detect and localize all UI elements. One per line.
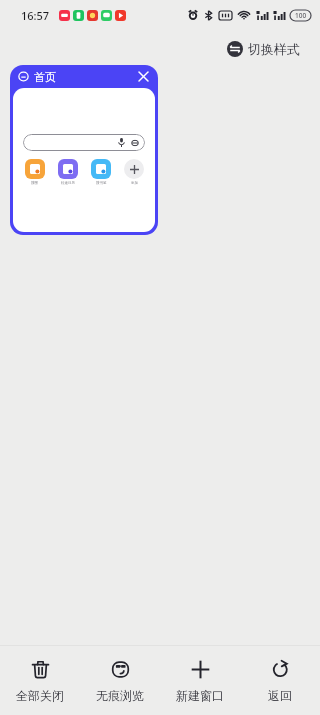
staticText: 100 [295, 11, 307, 20]
button[interactable]: 关闭标签页 [135, 68, 152, 85]
staticText: 搜图 [31, 181, 38, 185]
button[interactable]: 搜书签 [86, 159, 116, 185]
staticText: 首页 [34, 70, 56, 84]
button[interactable]: 切换样式 [221, 37, 306, 61]
staticText: 返回 [268, 688, 292, 703]
staticText: 切换样式 [248, 41, 300, 57]
button[interactable]: 搜索 [23, 134, 145, 151]
staticText: 添加 [131, 181, 138, 185]
staticText: 16:57 [21, 8, 50, 23]
button[interactable]: 添加快捷方式 [119, 159, 149, 185]
button[interactable]: 新建窗口 [160, 646, 240, 715]
staticText: 轻速日历 [61, 181, 75, 185]
button[interactable]: 首页 [10, 65, 158, 235]
button[interactable]: 轻速日历 [53, 159, 83, 185]
button[interactable]: 搜图 [19, 159, 50, 185]
button[interactable]: 全部关闭 [0, 646, 80, 715]
button[interactable]: 无痕浏览 [80, 646, 160, 715]
staticText: 全部关闭 [16, 688, 64, 703]
staticText: 无痕浏览 [96, 688, 144, 703]
button[interactable]: 返回 [240, 646, 320, 715]
staticText: 搜书签 [96, 181, 107, 185]
staticText: 新建窗口 [176, 688, 224, 703]
